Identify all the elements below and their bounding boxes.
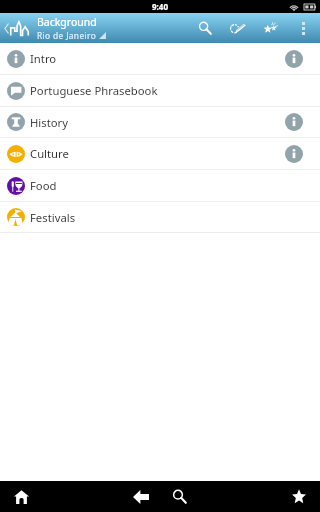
button[interactable]: Food [0,170,320,202]
button[interactable]: Bookmarks [283,481,314,512]
staticText: Festivals [30,210,76,225]
button[interactable]: Home [6,481,37,512]
staticText: 9:40 [152,1,168,12]
staticText: Rio de Janeiro [37,30,97,41]
button[interactable]: Back [0,13,32,43]
button[interactable]: Culture [0,138,320,170]
staticText: Intro [30,51,57,66]
button[interactable]: Intro [0,43,320,75]
button[interactable]: History [0,107,320,138]
staticText: History [30,115,69,130]
button[interactable]: Search [188,13,221,43]
other: Back [4,23,9,34]
button[interactable]: Back [125,481,156,512]
staticText: Food [30,178,57,193]
staticText: Portuguese Phrasebook [30,83,158,98]
button[interactable]: Edit [221,13,254,43]
staticText: Background [37,15,97,29]
staticText: Culture [30,146,69,161]
button[interactable]: Favourites [254,13,287,43]
button[interactable]: Portuguese Phrasebook [0,75,320,107]
button[interactable]: More options [287,13,320,43]
button[interactable]: Festivals [0,202,320,233]
button[interactable]: Search [164,481,195,512]
